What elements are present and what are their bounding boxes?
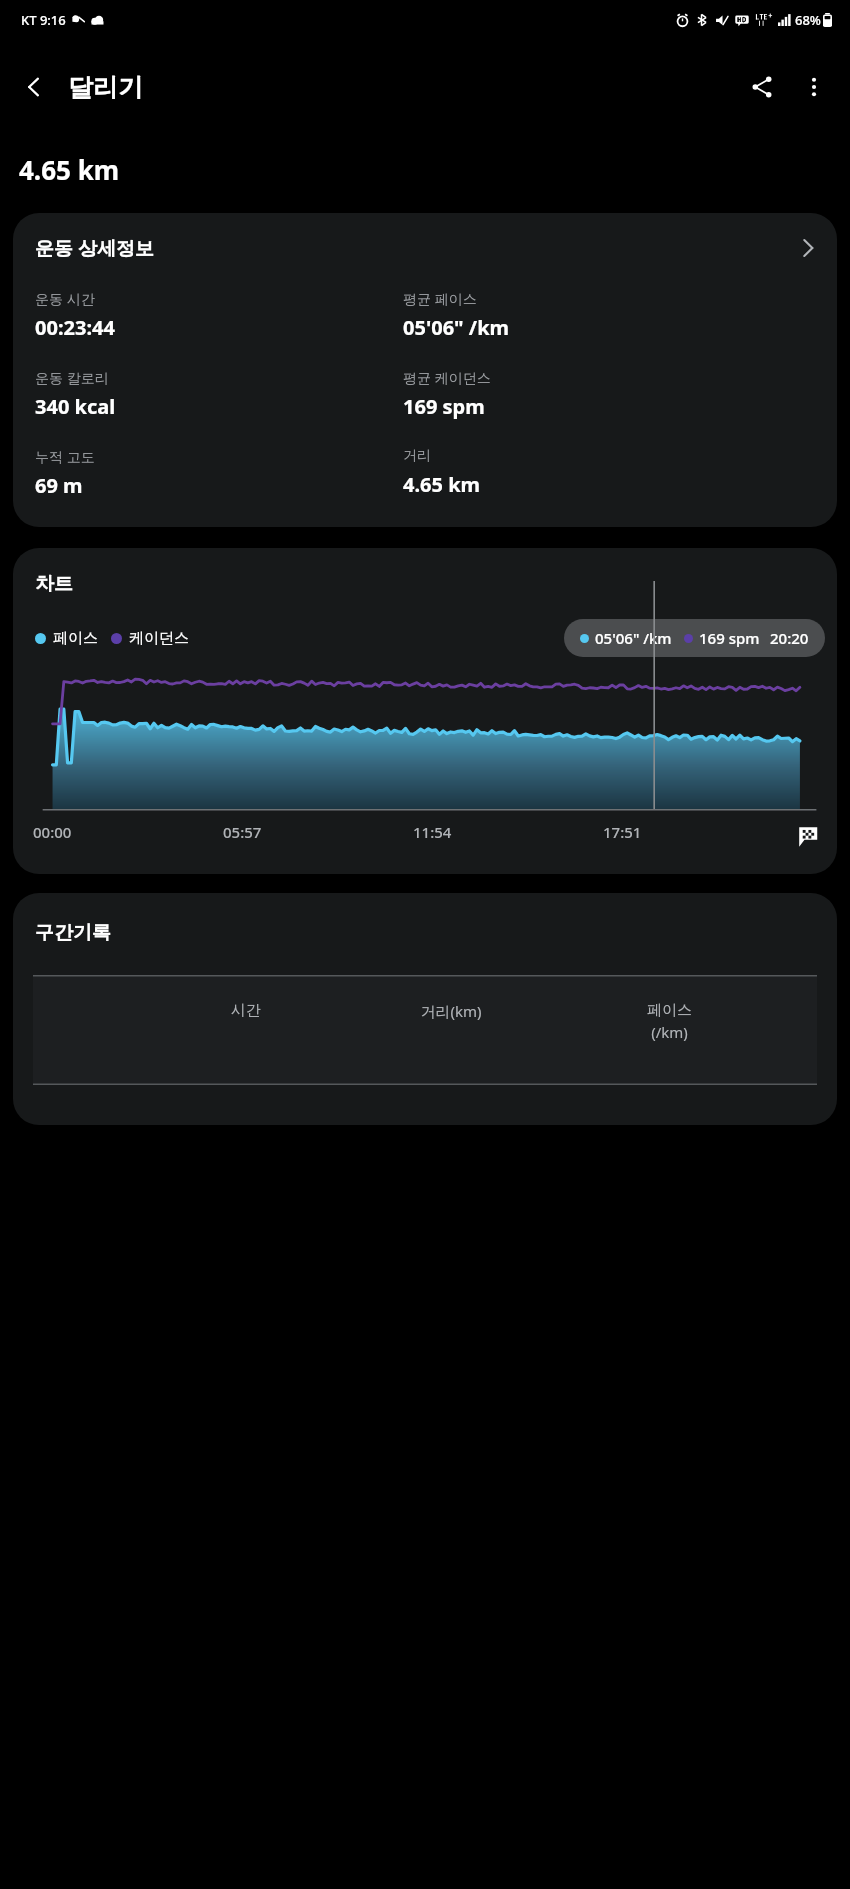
staticText: 거리 [403,447,431,465]
staticText: 00:00 [33,822,72,842]
staticText: 4.65 km [19,152,120,187]
staticText: 달리기 [68,72,143,103]
button[interactable]: 운동 상세정보 [13,213,837,527]
staticText: 4.65 km [403,471,481,498]
staticText: 340 kcal [35,393,116,420]
staticText: 운동 시간 [35,289,95,308]
staticText: 69 m [35,472,83,499]
staticText: 운동 상세정보 [35,235,797,261]
staticText: 00:23:44 [35,314,115,341]
staticText: 페이스 (/km) [647,1001,692,1043]
button[interactable]: Back [8,61,60,113]
staticText: 20:20 [770,628,809,648]
staticText: 구간기록 [35,921,111,945]
staticText: 평균 케이던스 [403,368,491,387]
staticText: 운동 칼로리 [35,368,109,387]
staticText: 케이던스 [129,629,189,648]
staticText: 페이스 [53,629,98,648]
staticText: 11:54 [413,822,452,842]
staticText: 05'06" /km [595,628,672,648]
button[interactable]: Share [736,61,788,113]
staticText: KT 9:16 [21,11,66,29]
staticText: 68% [795,11,821,29]
staticText: 누적 고도 [35,447,95,466]
button[interactable]: 차트 [13,548,837,874]
staticText: 시간 [231,1001,261,1020]
staticText: 평균 페이스 [403,289,477,308]
staticText: 거리(km) [420,1001,482,1021]
staticText: 169 spm [699,628,760,648]
button[interactable]: Finish flag [793,822,823,852]
staticText: 169 spm [403,393,485,420]
staticText: 17:51 [603,822,642,842]
button[interactable]: More options [788,61,840,113]
staticText: 차트 [35,572,73,596]
staticText: 05'06" /km [403,314,510,341]
staticText: 05:57 [223,822,262,842]
